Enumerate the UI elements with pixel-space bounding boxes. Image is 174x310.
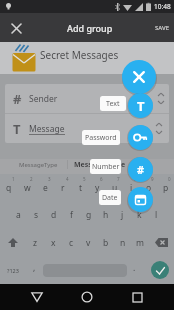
staticText: Text [106,99,120,109]
staticText: c [69,237,74,249]
button[interactable]: u [106,174,123,201]
button[interactable]: z [26,229,44,256]
button[interactable]: e [36,174,54,201]
staticText: 9 [151,176,154,182]
staticText: , [33,262,36,274]
staticText: 0 [168,176,171,182]
button[interactable]: o [140,174,157,201]
staticText: Password [85,133,117,143]
staticText: 5 [83,176,86,182]
staticText: 8 [134,176,137,182]
staticText: o [146,182,152,194]
button[interactable] [0,229,26,256]
staticText: T [137,97,145,115]
staticText: Number [92,162,120,172]
staticText: f [70,209,73,221]
button[interactable]: p [157,174,174,201]
button[interactable]: ?123 [0,256,26,284]
staticText: d [51,209,57,221]
button[interactable]: t [72,174,89,201]
staticText: m [136,237,144,249]
button[interactable]: s [27,201,45,229]
staticText: h [103,209,109,221]
staticText: Date [102,193,118,203]
button[interactable]: y [89,174,106,201]
button[interactable]: c [62,229,80,256]
button[interactable] [122,60,156,94]
button[interactable] [5,17,27,39]
button[interactable]: g [80,201,97,229]
button[interactable]: x [44,229,62,256]
button[interactable]: k [131,201,148,229]
button[interactable]: # [128,157,153,182]
staticText: # [137,162,145,177]
staticText: 2 [30,176,33,182]
button[interactable]: v [80,229,97,256]
button[interactable]: Password [82,130,120,145]
staticText: e [43,182,48,194]
staticText: r [61,182,65,194]
staticText: e [121,160,126,170]
button[interactable]: m [131,229,148,256]
button[interactable]: b [97,229,114,256]
staticText: a [16,209,21,221]
button[interactable]: r [54,174,72,201]
staticText: l [155,209,158,221]
button[interactable]: q [0,174,18,201]
staticText: z [33,237,37,249]
button[interactable] [124,284,150,310]
staticText: SAVE [155,24,170,32]
button[interactable]: i [123,174,140,201]
staticText: 4 [66,176,69,182]
staticText: 1 [12,176,15,182]
staticText: g [86,209,92,221]
button[interactable]: a [9,201,27,229]
staticText: q [6,182,12,194]
button[interactable]: T [128,93,153,118]
staticText: MessageType [19,161,58,169]
button[interactable]: l [148,201,165,229]
button[interactable]: T [5,114,169,143]
button[interactable] [24,284,50,310]
staticText: w [24,182,31,194]
button[interactable]: n [114,229,131,256]
staticText: 6 [100,176,103,182]
staticText: 10:48 [154,2,171,11]
button[interactable] [74,284,100,310]
staticText: x [51,237,56,249]
staticText: t [79,182,83,194]
staticText: Secret Messages [40,48,119,62]
button[interactable] [128,187,153,212]
button[interactable]: w [18,174,36,201]
button[interactable] [128,125,153,150]
button[interactable]: j [114,201,131,229]
staticText: n [120,237,126,249]
button[interactable]: h [97,201,114,229]
staticText: j [121,209,124,221]
button[interactable]: SAVE [152,21,173,35]
button[interactable]: Number [90,159,121,174]
staticText: Message [29,123,65,135]
staticText: Add group [67,22,113,34]
button[interactable]: # [5,84,169,113]
staticText: b [103,237,109,249]
staticText: Mess [74,160,92,170]
staticText: k [137,209,142,221]
staticText: 7 [117,176,120,182]
staticText: # [13,90,22,108]
button[interactable]: d [45,201,63,229]
staticText: y [95,182,100,194]
button[interactable] [151,261,169,279]
button[interactable]: Text [100,96,126,111]
staticText: ?123 [7,267,19,274]
staticText: 3 [48,176,51,182]
staticText: T [13,120,21,138]
staticText: s [34,209,39,221]
button[interactable]: f [63,201,80,229]
staticText: v [86,237,91,249]
button[interactable] [148,229,174,256]
button[interactable]: Date [99,190,121,205]
